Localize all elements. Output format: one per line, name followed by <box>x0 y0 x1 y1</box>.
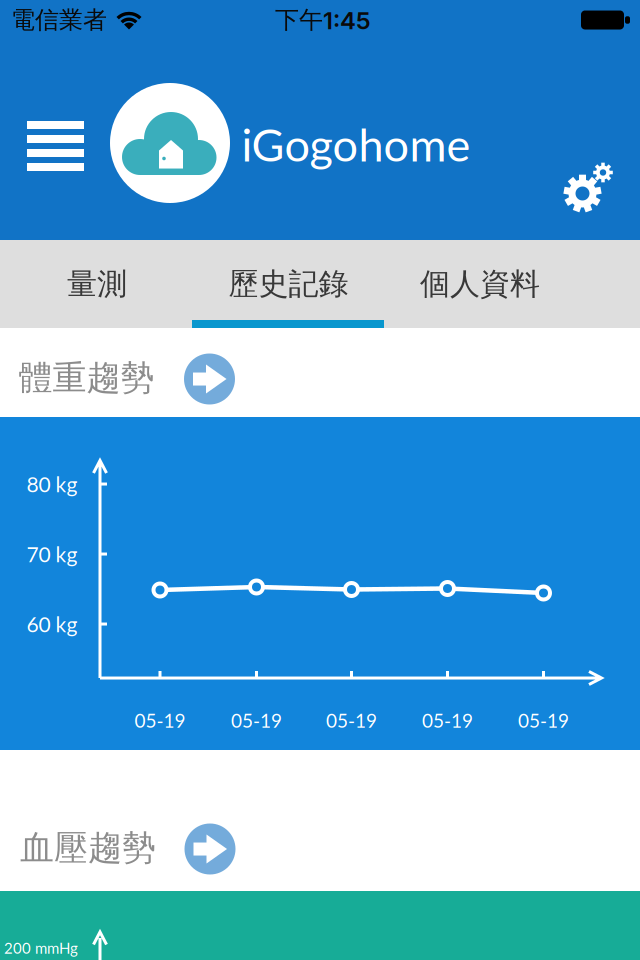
staticText: 80 kg <box>26 471 77 497</box>
staticText: 血壓趨勢 <box>20 827 156 869</box>
staticText: 05-19 <box>134 709 185 732</box>
staticText: 05-19 <box>518 709 569 732</box>
staticText: 電信業者 <box>11 5 107 35</box>
staticText: 200 mmHg <box>4 939 78 957</box>
staticText: 量測 <box>67 265 127 303</box>
staticText: 70 kg <box>26 541 77 567</box>
button[interactable]: 量測 <box>1 240 193 328</box>
button[interactable]: Show details <box>184 823 235 874</box>
staticText: 05-19 <box>231 709 282 732</box>
staticText: 歷史記錄 <box>228 265 348 303</box>
staticText: 個人資料 <box>420 265 540 303</box>
staticText: 60 kg <box>26 611 77 637</box>
staticText: iGogohome <box>241 117 470 171</box>
button[interactable]: Show details <box>184 353 235 404</box>
staticText: 05-19 <box>326 709 377 732</box>
button[interactable]: 個人資料 <box>384 240 576 328</box>
staticText: 體重趨勢 <box>18 357 154 399</box>
button[interactable]: Menu <box>27 121 84 171</box>
staticText: 下午1:45 <box>275 5 371 35</box>
button[interactable]: 歷史記錄 <box>193 240 384 328</box>
button[interactable]: Settings <box>550 144 614 213</box>
staticText: 05-19 <box>422 709 473 732</box>
